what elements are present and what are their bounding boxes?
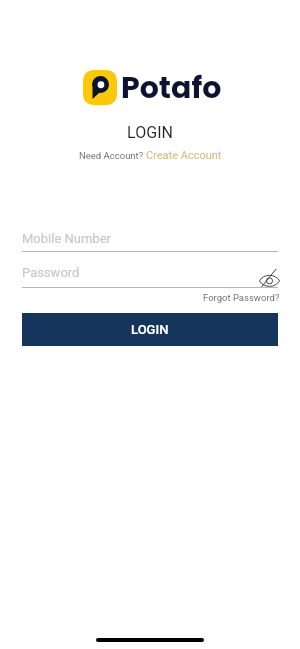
staticText: Need Account?	[79, 150, 146, 161]
button[interactable]: Create Account	[146, 149, 222, 162]
staticText: Create Account	[146, 149, 222, 162]
staticText: Potafo	[121, 67, 222, 109]
button[interactable]: Forgot Password?	[203, 292, 280, 303]
staticText: LOGIN	[131, 322, 169, 337]
staticText: Forgot Password?	[203, 292, 280, 303]
button[interactable]: Show password	[257, 265, 281, 288]
staticText: LOGIN	[0, 123, 300, 142]
staticText: Password	[22, 265, 80, 280]
staticText: Mobile Number	[22, 231, 111, 246]
button[interactable]: LOGIN	[22, 313, 278, 346]
